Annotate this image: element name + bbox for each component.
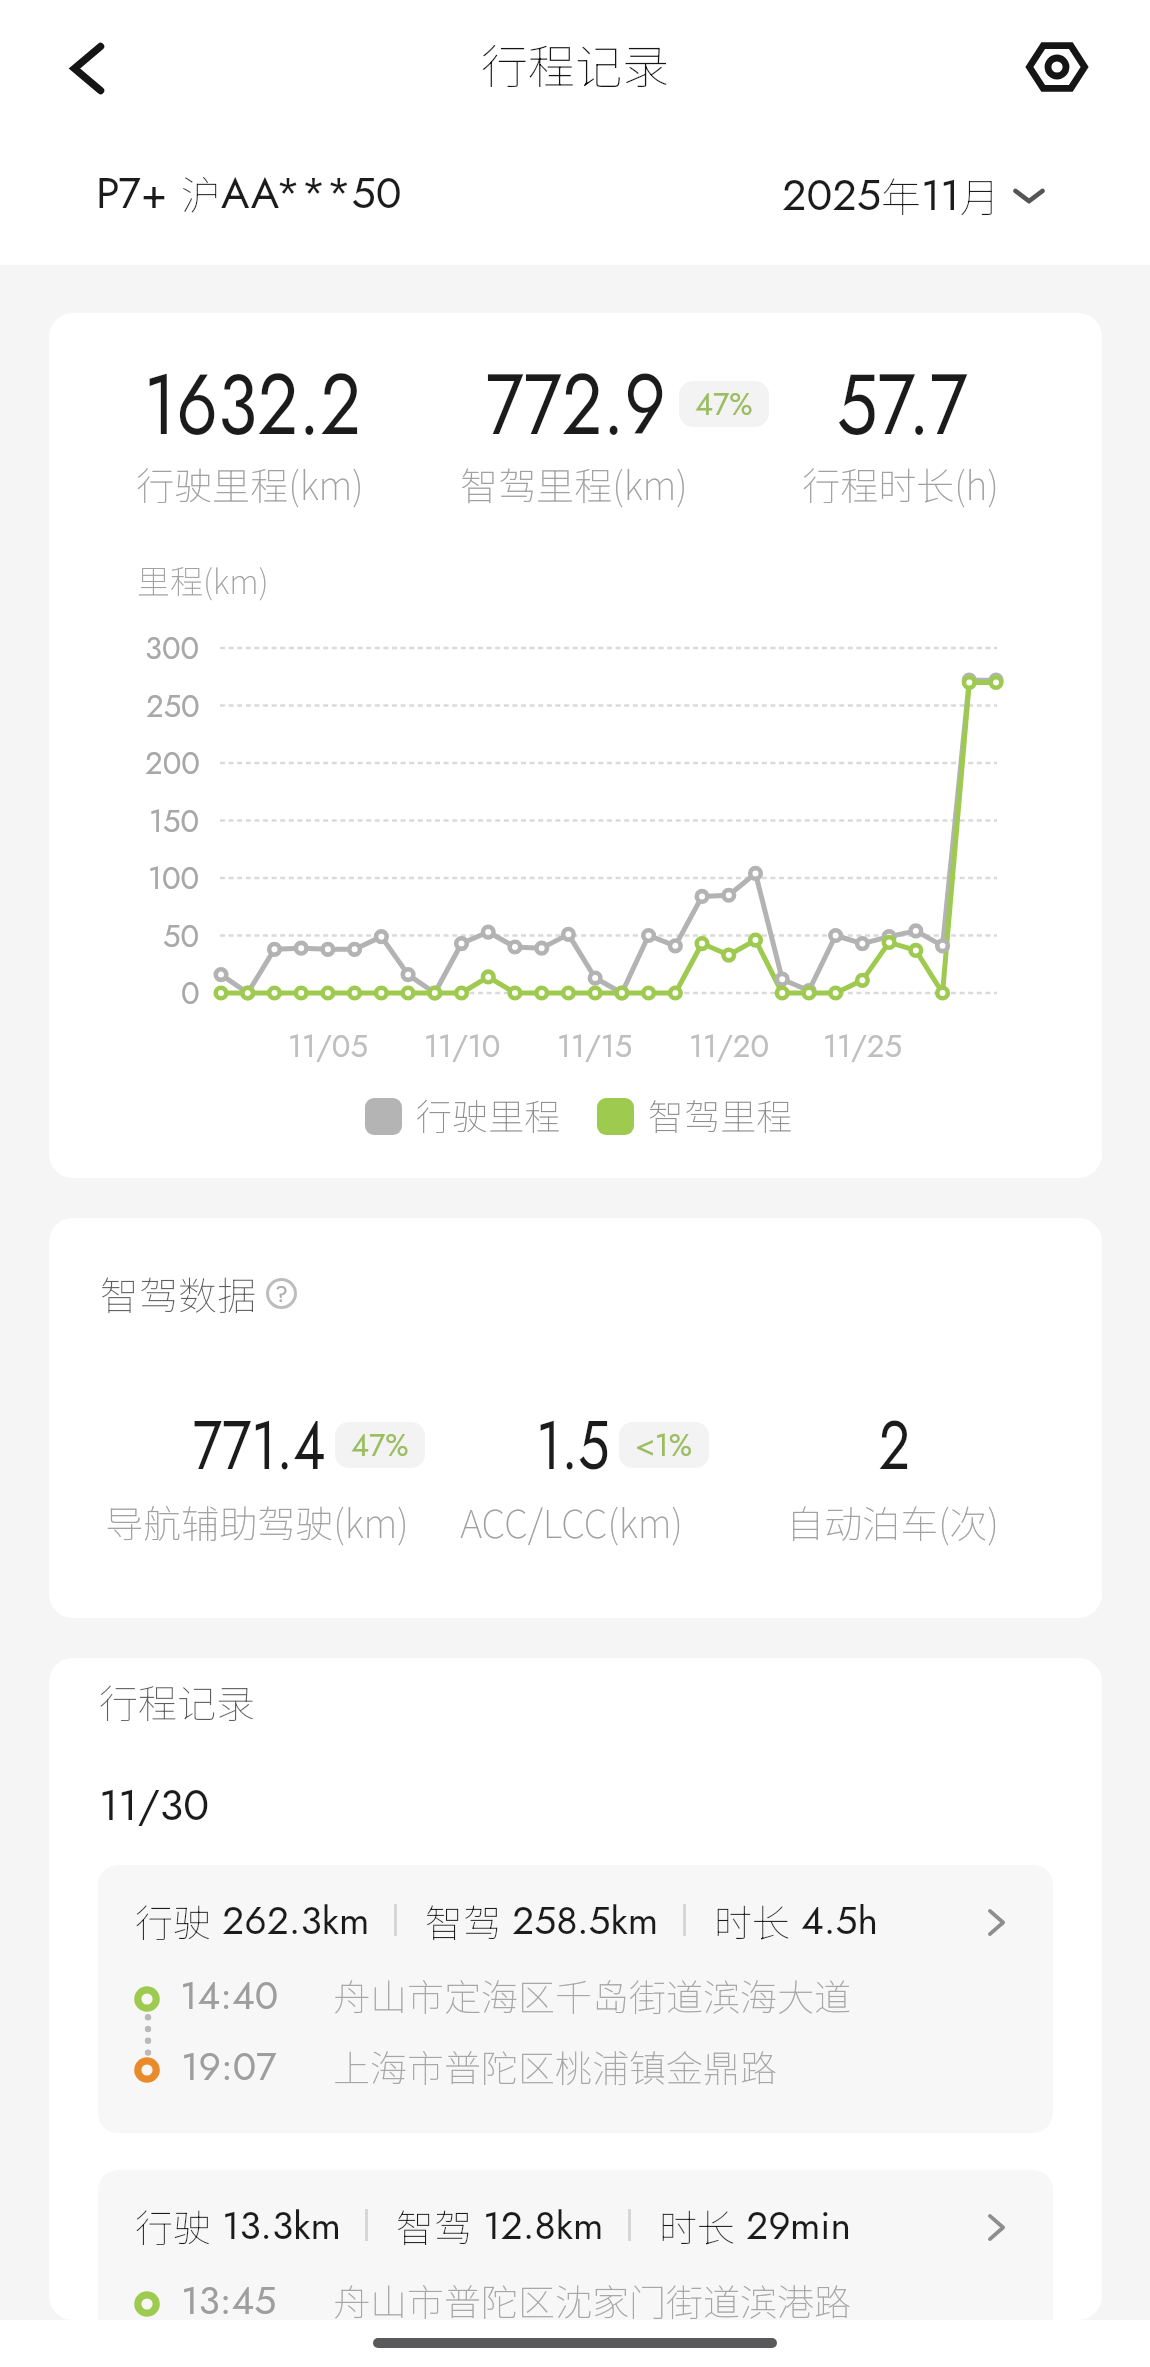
- staticText: 19:07: [181, 2038, 277, 2094]
- staticText: 47%: [351, 1423, 409, 1468]
- staticText: 智驾里程: [648, 1088, 793, 1140]
- button[interactable]: [98, 2170, 1053, 2367]
- staticText: 沪: [181, 164, 221, 222]
- staticText: 150: [149, 799, 200, 844]
- button[interactable]: [98, 1865, 1053, 2133]
- staticText: 4.5h: [801, 1892, 878, 1948]
- button[interactable]: Open trip details: [974, 2205, 1018, 2249]
- staticText: 舟山市定海区千岛街道滨海大道: [333, 1968, 851, 2022]
- staticText: 11/05: [288, 1024, 368, 1069]
- staticText: 行驶里程: [416, 1088, 561, 1140]
- staticText: 29min: [746, 2197, 851, 2253]
- staticText: 0: [181, 971, 200, 1016]
- staticText: 智驾数据: [100, 1265, 257, 1321]
- button[interactable]: Open trip details: [974, 1900, 1018, 1944]
- staticText: 行驶: [135, 1893, 212, 1948]
- staticText: 月: [960, 166, 1000, 224]
- staticText: 258.5km: [512, 1892, 659, 1948]
- staticText: <1%: [635, 1423, 693, 1468]
- staticText: 13:45: [181, 2272, 277, 2328]
- staticText: 2025: [782, 164, 881, 226]
- staticText: 11/10: [424, 1024, 501, 1069]
- staticText: 1.5: [536, 1396, 610, 1494]
- staticText: 里程(km): [137, 556, 269, 604]
- staticText: 行驶里程(km): [136, 456, 364, 511]
- staticText: 11: [921, 164, 960, 226]
- staticText: 舟山市普陀区沈家门街道滨港路: [333, 2273, 851, 2327]
- staticText: 时长: [659, 2198, 736, 2253]
- staticText: 智驾里程(km): [460, 456, 688, 511]
- staticText: 11/20: [689, 1024, 770, 1069]
- staticText: 100: [148, 856, 200, 901]
- staticText: 智驾: [396, 2198, 473, 2253]
- staticText: 行程时长(h): [802, 456, 999, 511]
- staticText: 年: [881, 166, 921, 224]
- staticText: 行程记录: [481, 29, 669, 97]
- button[interactable]: 智驾数据: [100, 1265, 297, 1321]
- staticText: 1632.2: [144, 344, 361, 464]
- staticText: 智驾: [425, 1893, 502, 1948]
- staticText: 13.3km: [222, 2197, 341, 2253]
- staticText: 262.3km: [222, 1892, 370, 1948]
- staticText: 300: [145, 626, 200, 671]
- staticText: ?: [275, 1277, 288, 1308]
- staticText: 11/25: [823, 1024, 902, 1069]
- button[interactable]: Settings: [1009, 19, 1105, 115]
- button[interactable]: Back: [39, 20, 135, 116]
- staticText: 771.4: [193, 1396, 326, 1494]
- staticText: 200: [145, 741, 200, 786]
- staticText: P7+: [96, 162, 181, 224]
- staticText: 772.9: [486, 344, 666, 464]
- staticText: ACC/LCC(km): [460, 1494, 683, 1549]
- staticText: 250: [146, 684, 200, 729]
- staticText: 11/15: [557, 1024, 633, 1069]
- staticText: 导航辅助驾驶(km): [105, 1494, 409, 1549]
- staticText: 自动泊车(次): [786, 1494, 999, 1549]
- staticText: 50: [163, 914, 200, 959]
- staticText: 2: [878, 1396, 910, 1494]
- staticText: 行程记录: [99, 1673, 256, 1729]
- staticText: AA***50: [221, 162, 402, 224]
- staticText: 时长: [714, 1893, 791, 1948]
- staticText: 上海市普陀区桃浦镇金鼎路: [333, 2039, 777, 2093]
- staticText: 47%: [695, 382, 753, 427]
- button[interactable]: 2025: [782, 164, 1046, 226]
- staticText: 行驶: [135, 2198, 212, 2253]
- staticText: 14:40: [180, 1967, 279, 2023]
- staticText: 11/30: [99, 1774, 210, 1836]
- staticText: 57.7: [837, 344, 968, 464]
- staticText: 12.8km: [483, 2197, 604, 2253]
